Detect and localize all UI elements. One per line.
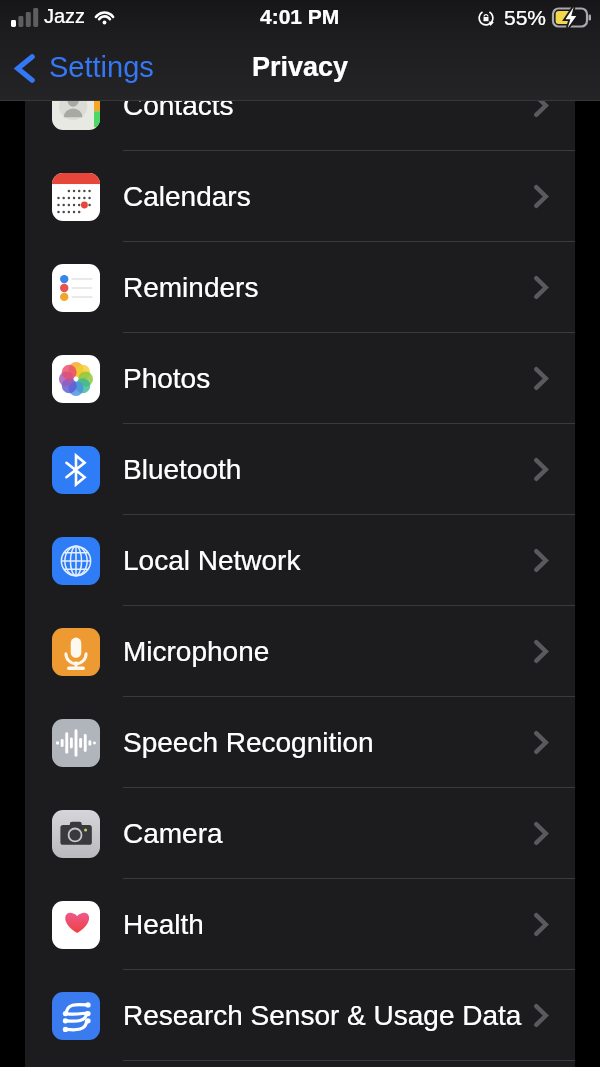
- button[interactable]: Calendars: [25, 151, 575, 242]
- button[interactable]: Microphone: [25, 606, 575, 697]
- staticText: Health: [123, 909, 204, 940]
- staticText: Speech Recognition: [123, 727, 374, 758]
- staticText: Microphone: [123, 636, 270, 667]
- button[interactable]: Contacts: [25, 101, 575, 151]
- button[interactable]: Bluetooth: [25, 424, 575, 515]
- staticText: Contacts: [123, 101, 234, 121]
- button[interactable]: Photos: [25, 333, 575, 424]
- staticText: Calendars: [123, 181, 251, 212]
- button[interactable]: Local Network: [25, 515, 575, 606]
- button[interactable]: Reminders: [25, 242, 575, 333]
- button[interactable]: Health: [25, 879, 575, 970]
- staticText: 55%: [504, 6, 547, 29]
- staticText: Bluetooth: [123, 454, 242, 485]
- staticText: Photos: [123, 363, 211, 394]
- staticText: Privacy: [252, 52, 349, 82]
- staticText: Jazz: [44, 5, 86, 27]
- staticText: Camera: [123, 818, 223, 849]
- staticText: 4:01 PM: [260, 5, 340, 28]
- button[interactable]: Camera: [25, 788, 575, 879]
- staticText: Reminders: [123, 272, 259, 303]
- staticText: Research Sensor & Usage Data: [123, 1000, 522, 1031]
- button[interactable]: Research Sensor & Usage Data: [25, 970, 575, 1061]
- staticText: Local Network: [123, 545, 301, 576]
- staticText: Settings: [49, 51, 154, 83]
- button[interactable]: Speech Recognition: [25, 697, 575, 788]
- button[interactable]: Settings: [0, 46, 164, 90]
